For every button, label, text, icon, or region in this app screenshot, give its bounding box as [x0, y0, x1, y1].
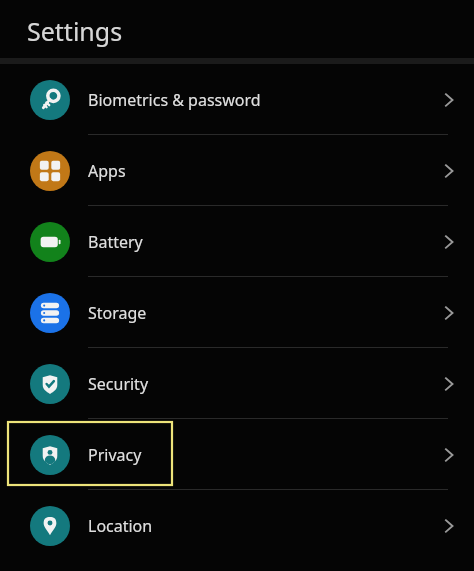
- button[interactable]: Biometrics & password: [0, 64, 474, 135]
- button[interactable]: Privacy: [0, 419, 474, 490]
- staticText: Battery: [88, 231, 438, 253]
- other: Security: [438, 373, 460, 395]
- staticText: Security: [88, 373, 438, 395]
- other: Biometrics & password: [438, 89, 460, 111]
- button[interactable]: Battery: [0, 206, 474, 277]
- other: Battery: [438, 231, 460, 253]
- button[interactable]: Location: [0, 490, 474, 561]
- staticText: Privacy: [88, 444, 438, 466]
- other: Location: [438, 515, 460, 537]
- staticText: Storage: [88, 302, 438, 324]
- staticText: Apps: [88, 160, 438, 182]
- other: Storage: [438, 302, 460, 324]
- staticText: Settings: [27, 14, 123, 48]
- button[interactable]: Security: [0, 348, 474, 419]
- button[interactable]: Storage: [0, 277, 474, 348]
- staticText: Location: [88, 515, 438, 537]
- other: Apps: [438, 160, 460, 182]
- other: Privacy: [438, 444, 460, 466]
- staticText: Biometrics & password: [88, 89, 438, 111]
- button[interactable]: Apps: [0, 135, 474, 206]
